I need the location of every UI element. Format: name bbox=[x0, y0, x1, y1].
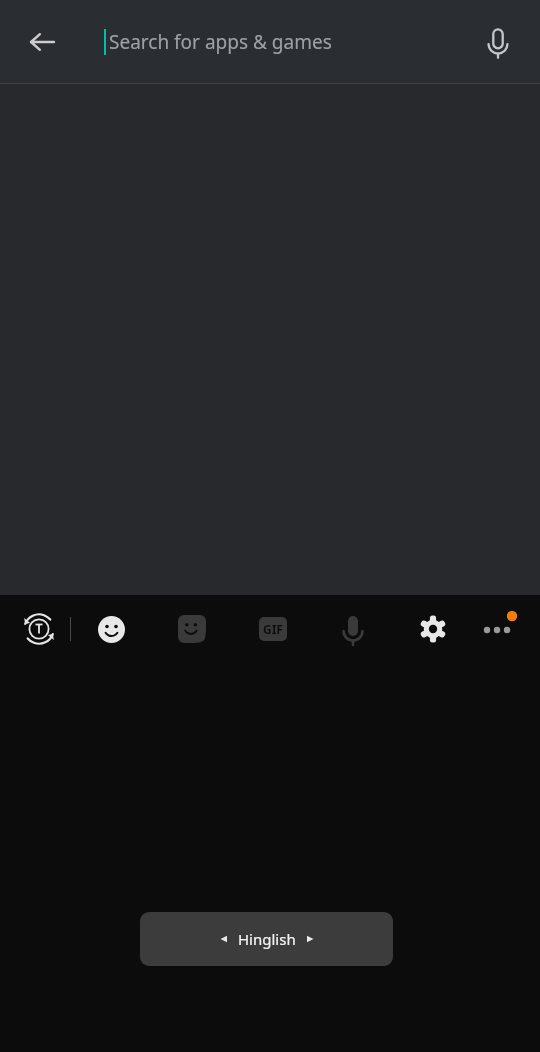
button[interactable]: Back bbox=[14, 14, 70, 70]
button[interactable]: Emoji bbox=[87, 605, 135, 653]
button[interactable]: More options bbox=[474, 605, 522, 653]
button[interactable]: Search for apps & games bbox=[104, 12, 444, 72]
button[interactable]: GIF bbox=[249, 605, 297, 653]
staticText: Hinglish bbox=[238, 929, 296, 949]
button[interactable]: Settings bbox=[409, 605, 457, 653]
button[interactable]: Voice input bbox=[329, 605, 377, 653]
button[interactable]: Translate bbox=[15, 605, 63, 653]
button[interactable]: Stickers bbox=[168, 605, 216, 653]
button[interactable]: Hinglish bbox=[140, 912, 393, 966]
staticText: Search for apps & games bbox=[109, 29, 332, 55]
button[interactable]: Voice search bbox=[470, 14, 526, 70]
staticText: GIF bbox=[263, 621, 283, 637]
other: Space, Hinglish bbox=[140, 912, 393, 966]
